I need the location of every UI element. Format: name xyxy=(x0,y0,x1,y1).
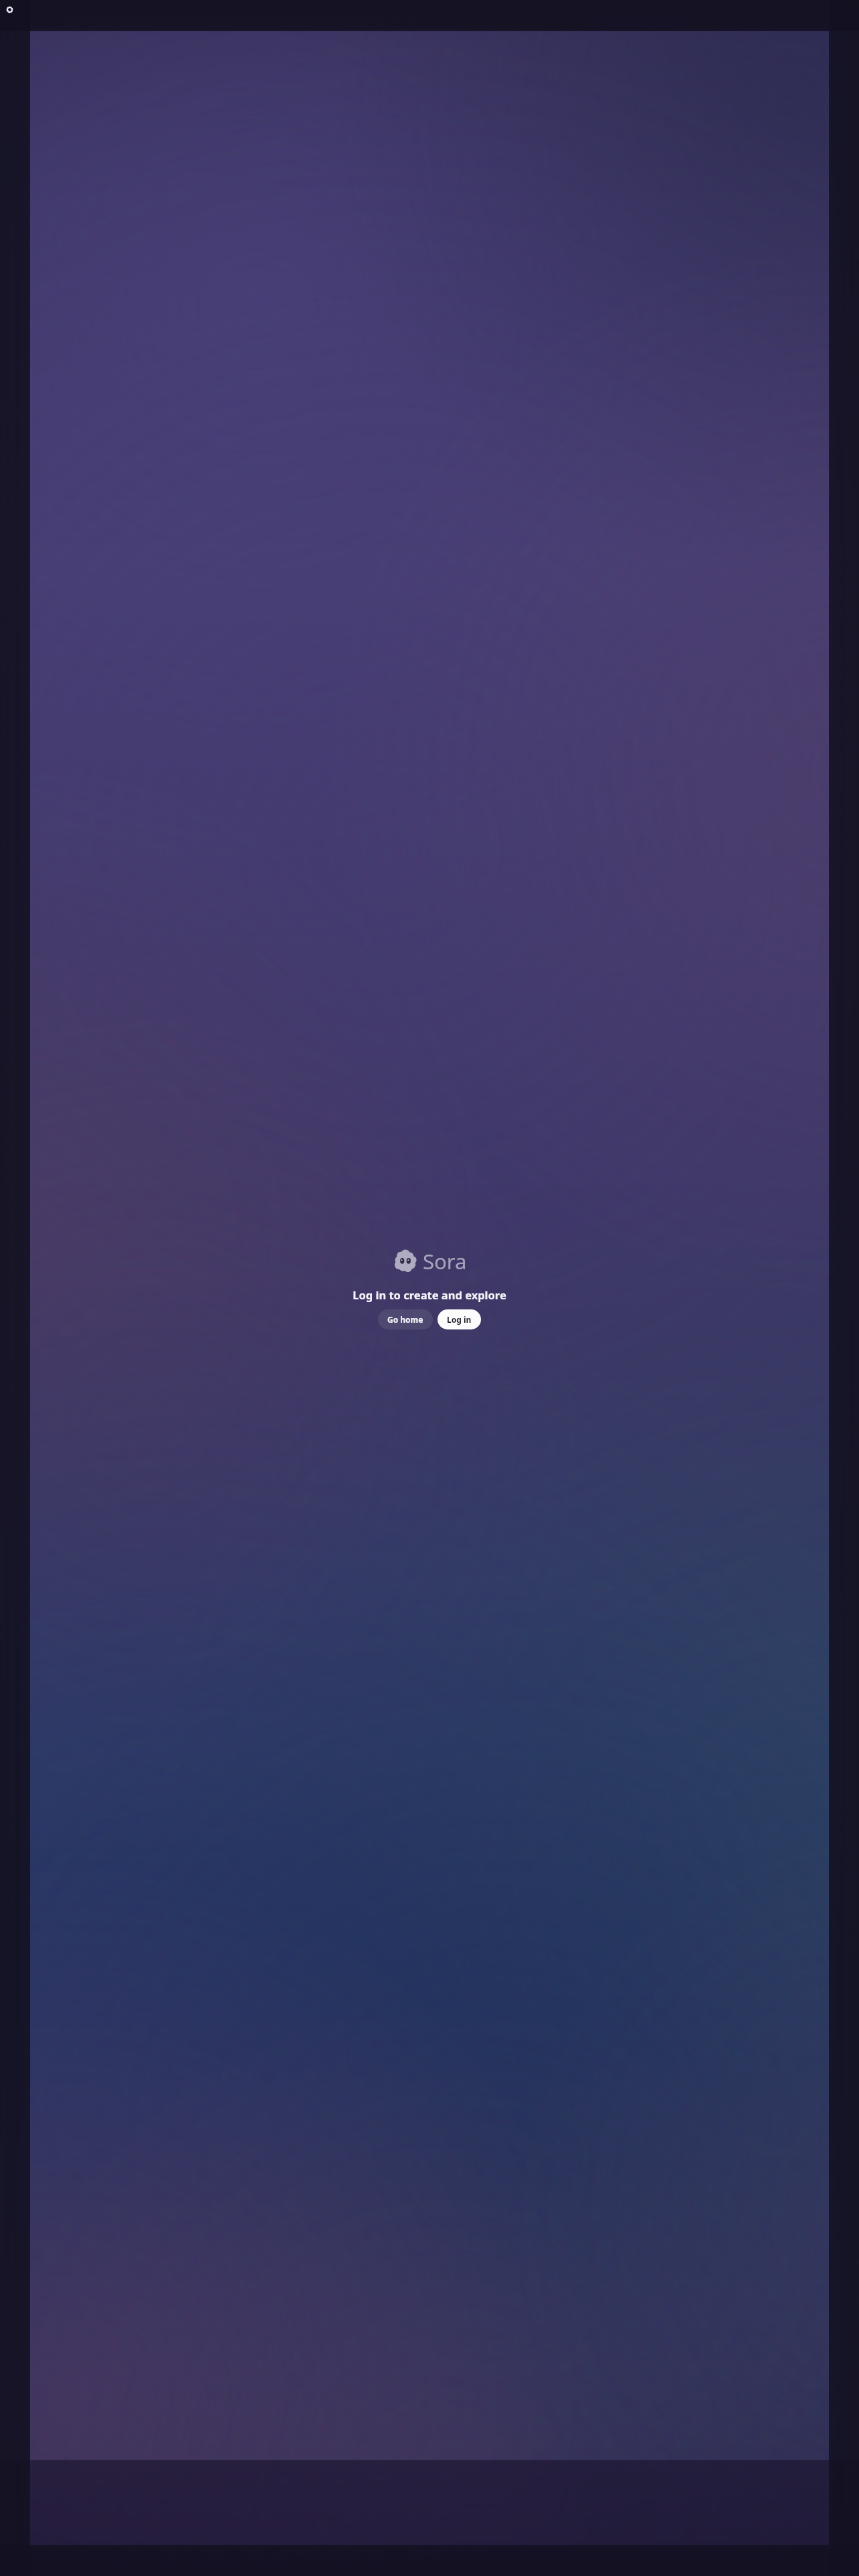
button[interactable]: OpenAI xyxy=(3,3,16,16)
staticText: Go home xyxy=(387,1314,423,1325)
button[interactable]: Log in xyxy=(438,1309,481,1329)
staticText: Sora xyxy=(423,1247,467,1275)
staticText: Log in to create and explore xyxy=(353,1287,506,1302)
staticText: Log in xyxy=(447,1314,472,1325)
button[interactable]: Go home xyxy=(378,1309,433,1329)
